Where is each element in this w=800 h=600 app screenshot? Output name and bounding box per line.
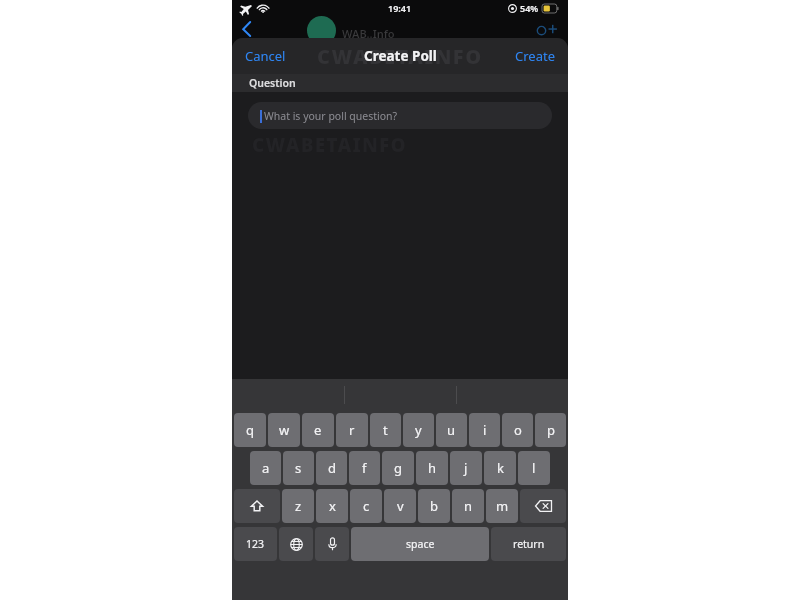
staticText: z: [295, 497, 302, 515]
staticText: 123: [246, 537, 265, 551]
staticText: WAB..Info: [342, 26, 395, 41]
button[interactable]: Backspace: [520, 489, 566, 523]
staticText: v: [397, 497, 404, 515]
button[interactable]: f: [349, 451, 380, 485]
button[interactable]: w: [268, 413, 300, 447]
staticText: k: [497, 459, 504, 477]
staticText: u: [447, 421, 456, 439]
button[interactable]: r: [336, 413, 368, 447]
button[interactable]: g: [382, 451, 414, 485]
button[interactable]: a: [250, 451, 281, 485]
staticText: s: [295, 459, 302, 477]
staticText: l: [532, 459, 536, 477]
button[interactable]: k: [484, 451, 516, 485]
button[interactable]: t: [370, 413, 401, 447]
staticText: w: [279, 421, 290, 439]
staticText: b: [430, 497, 438, 515]
button[interactable]: e: [302, 413, 334, 447]
button[interactable]: y: [403, 413, 434, 447]
staticText: f: [362, 459, 367, 477]
staticText: o: [514, 421, 522, 439]
staticText: Create Poll: [364, 47, 437, 65]
staticText: g: [394, 459, 402, 477]
staticText: CWABETAINFO: [317, 43, 483, 70]
staticText: c: [363, 497, 370, 515]
staticText: 54%: [520, 2, 539, 14]
staticText: x: [329, 497, 336, 515]
button[interactable]: m: [486, 489, 518, 523]
button[interactable]: Dictation: [315, 527, 349, 561]
button[interactable]: p: [535, 413, 566, 447]
button[interactable]: v: [384, 489, 416, 523]
button[interactable]: n: [452, 489, 484, 523]
staticText: space: [406, 537, 435, 551]
staticText: CWABETAINFO: [252, 132, 407, 158]
staticText: e: [314, 421, 322, 439]
staticText: a: [262, 459, 270, 477]
staticText: j: [464, 459, 468, 477]
staticText: What is your poll question?: [264, 109, 398, 123]
button[interactable]: Shift: [234, 489, 280, 523]
button[interactable]: b: [418, 489, 450, 523]
button[interactable]: o: [502, 413, 533, 447]
staticText: h: [428, 459, 437, 477]
staticText: Question: [249, 76, 296, 90]
staticText: r: [349, 421, 355, 439]
button[interactable]: Create: [509, 42, 561, 70]
staticText: n: [464, 497, 473, 515]
button[interactable]: What is your poll question?: [248, 102, 552, 129]
button[interactable]: s: [283, 451, 314, 485]
button[interactable]: i: [469, 413, 500, 447]
button[interactable]: Switch keyboard: [279, 527, 313, 561]
button[interactable]: h: [416, 451, 448, 485]
staticText: return: [513, 537, 545, 551]
staticText: i: [483, 421, 487, 439]
button[interactable]: l: [518, 451, 550, 485]
staticText: Cancel: [245, 47, 286, 65]
staticText: Create: [515, 47, 555, 65]
button[interactable]: c: [350, 489, 382, 523]
button[interactable]: d: [316, 451, 347, 485]
staticText: q: [246, 421, 254, 439]
button[interactable]: j: [450, 451, 482, 485]
staticText: y: [415, 421, 422, 439]
staticText: d: [328, 459, 336, 477]
button[interactable]: space: [351, 527, 489, 561]
button[interactable]: z: [282, 489, 314, 523]
button[interactable]: x: [316, 489, 348, 523]
button[interactable]: u: [436, 413, 467, 447]
staticText: 19:41: [388, 2, 412, 14]
staticText: m: [496, 497, 509, 515]
button[interactable]: return: [491, 527, 566, 561]
staticText: t: [383, 421, 388, 439]
staticText: p: [547, 421, 555, 439]
button[interactable]: Numbers: [234, 527, 277, 561]
button[interactable]: q: [234, 413, 266, 447]
button[interactable]: Cancel: [239, 42, 292, 70]
